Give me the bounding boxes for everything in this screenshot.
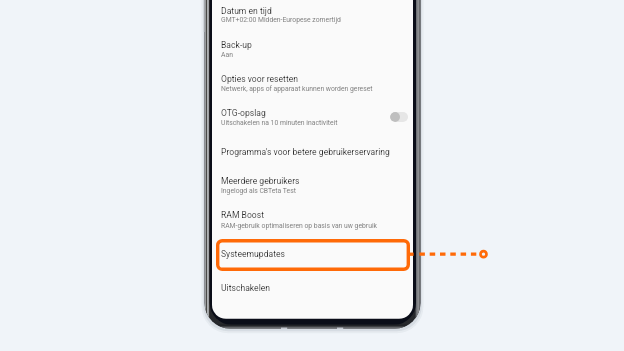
button[interactable]: [212, 135, 413, 166]
staticText: Uitschakelen: [221, 283, 271, 293]
button[interactable]: [212, 166, 413, 200]
button[interactable]: [212, 30, 413, 64]
staticText: Back-up: [221, 40, 252, 50]
staticText: RAM Boost: [221, 210, 264, 220]
staticText: Aan: [221, 51, 233, 59]
staticText: GMT+02:00 Midden-Europese zomertijd: [221, 16, 341, 24]
staticText: Programma's voor betere gebruikerservari…: [221, 147, 390, 157]
button[interactable]: [212, 64, 413, 98]
staticText: Systeemupdates: [221, 249, 285, 259]
staticText: Uitschakelen na 10 minuten inactiviteit: [221, 119, 338, 127]
button[interactable]: [212, 200, 413, 236]
button[interactable]: [212, 98, 413, 135]
staticText: Ingelogd als CBTeta Test: [221, 187, 296, 195]
staticText: Datum en tijd: [221, 6, 272, 16]
staticText: OTG-opslag: [221, 108, 266, 118]
staticText: RAM-gebruik optimaliseren op basis van u…: [221, 222, 377, 230]
staticText: Netwerk, apps of apparaat kunnen worden …: [221, 85, 373, 93]
button[interactable]: OTG-opslag aan/uit: [390, 112, 408, 122]
button[interactable]: [216, 239, 410, 271]
staticText: Opties voor resetten: [221, 74, 299, 84]
button[interactable]: [212, 0, 413, 30]
staticText: Meerdere gebruikers: [221, 176, 300, 186]
button[interactable]: [212, 272, 413, 308]
